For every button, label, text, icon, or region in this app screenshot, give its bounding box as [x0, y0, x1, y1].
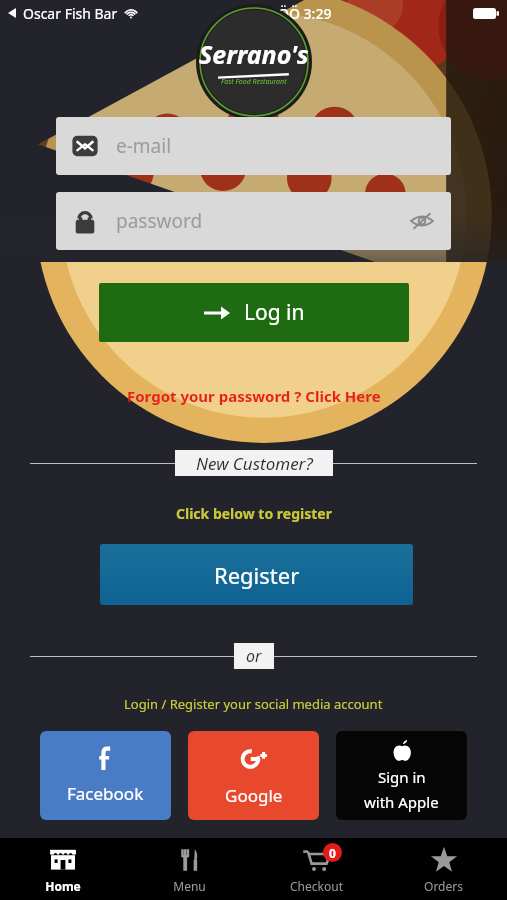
staticText: Google — [225, 784, 283, 807]
other: Google — [239, 744, 269, 774]
staticText: password — [116, 208, 203, 234]
other: Facebook — [93, 746, 119, 772]
staticText: ÖÖ 3:29 — [278, 4, 332, 23]
staticText: Oscar Fish Bar — [23, 4, 118, 23]
button[interactable]: Menu — [126, 838, 253, 900]
staticText: New Customer? — [196, 452, 313, 475]
staticText: Serrano's — [199, 37, 309, 71]
staticText: Facebook — [67, 782, 144, 805]
staticText: Checkout — [290, 878, 343, 894]
staticText: Fast Food Restaurant — [221, 77, 287, 87]
button[interactable]: Facebook — [40, 731, 171, 820]
staticText: Orders — [424, 878, 463, 894]
button[interactable]: Sign in with Apple — [336, 731, 467, 820]
button[interactable]: Log in — [99, 283, 409, 342]
staticText: Log in — [244, 298, 305, 327]
staticText: Login / Register your social media accou… — [124, 695, 383, 713]
staticText: or — [246, 645, 262, 667]
button[interactable]: Show password — [407, 206, 437, 236]
staticText: Home — [45, 878, 81, 894]
staticText: Register — [214, 560, 300, 590]
staticText: Click below to register — [176, 504, 332, 523]
button[interactable]: Google — [188, 731, 319, 820]
button[interactable]: 0 — [253, 838, 380, 900]
button[interactable]: e-mail — [56, 117, 451, 175]
staticText: Menu — [173, 878, 206, 894]
button[interactable]: Orders — [380, 838, 507, 900]
staticText: with Apple — [364, 792, 439, 812]
button[interactable]: Forgot your password ? Click Here — [0, 386, 507, 406]
staticText: Forgot your password ? Click Here — [127, 386, 381, 406]
button[interactable]: Register — [100, 544, 413, 605]
button[interactable]: Home — [0, 838, 126, 900]
other: Sign in with Apple — [391, 740, 413, 762]
staticText: Sign in — [378, 767, 426, 787]
staticText: 0 — [329, 845, 336, 861]
staticText: e-mail — [116, 133, 172, 159]
button[interactable]: password — [56, 192, 451, 250]
